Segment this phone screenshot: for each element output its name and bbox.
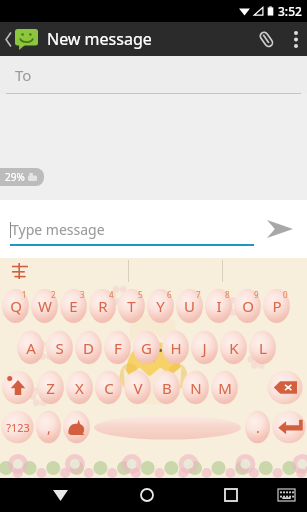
button[interactable]: More options — [285, 22, 307, 56]
button[interactable]: N — [181, 369, 210, 406]
button[interactable]: L — [248, 329, 277, 366]
button[interactable]: M — [210, 369, 239, 406]
staticText: B — [162, 378, 172, 398]
staticText: New message — [47, 28, 152, 50]
button[interactable]: W — [30, 287, 59, 325]
button[interactable]: ?123 — [0, 409, 35, 445]
staticText: 3:52 — [278, 3, 302, 19]
staticText: 7 — [196, 289, 201, 300]
staticText: U — [184, 296, 195, 316]
staticText: W — [38, 296, 52, 316]
other: Up — [5, 33, 12, 46]
button[interactable]: F — [103, 329, 132, 366]
button[interactable]: Language — [12, 263, 28, 279]
staticText: 8 — [225, 289, 230, 300]
staticText: 0 — [283, 289, 288, 300]
staticText: X — [75, 378, 84, 398]
staticText: R — [98, 296, 108, 316]
staticText: 1 — [22, 289, 27, 300]
staticText: ?123 — [6, 420, 30, 435]
staticText: L — [259, 338, 267, 358]
staticText: S — [55, 338, 64, 358]
staticText: Z — [46, 378, 55, 398]
button[interactable]: 29% — [0, 168, 44, 186]
button[interactable]: O — [233, 287, 262, 325]
button[interactable]: U — [175, 287, 204, 325]
staticText: C — [104, 378, 114, 398]
button[interactable]: Send — [261, 210, 299, 248]
button[interactable]: I — [204, 287, 233, 325]
staticText: V — [133, 378, 143, 398]
staticText: G — [141, 338, 152, 358]
staticText: I — [216, 296, 222, 316]
button[interactable]: B — [152, 369, 181, 406]
staticText: 6 — [167, 289, 172, 300]
button[interactable]: T — [117, 287, 146, 325]
button[interactable]: Home — [127, 478, 167, 512]
button[interactable]: Attach — [247, 22, 285, 56]
button[interactable]: . — [244, 409, 271, 445]
staticText: F — [114, 338, 122, 358]
button[interactable]: Space — [94, 412, 241, 442]
button[interactable]: Emoji — [62, 409, 91, 445]
button[interactable]: H — [161, 329, 190, 366]
button[interactable]: C — [94, 369, 123, 406]
staticText: E — [69, 296, 78, 316]
staticText: H — [170, 338, 182, 358]
staticText: Type message — [11, 220, 105, 239]
button[interactable]: S — [45, 329, 74, 366]
button[interactable]: P — [262, 287, 291, 325]
button[interactable]: Back — [40, 478, 80, 512]
staticText: 2 — [51, 289, 56, 300]
button[interactable]: D — [74, 329, 103, 366]
staticText: O — [242, 296, 254, 316]
staticText: T — [127, 296, 136, 316]
button[interactable]: R — [88, 287, 117, 325]
staticText: A — [26, 338, 36, 358]
staticText: Q — [10, 296, 22, 316]
button[interactable]: Shift — [0, 369, 36, 406]
staticText: . — [256, 418, 260, 437]
button[interactable]: J — [190, 329, 219, 366]
staticText: Y — [156, 296, 165, 316]
button[interactable]: E — [59, 287, 88, 325]
button[interactable]: A — [16, 329, 45, 366]
staticText: 5 — [138, 289, 143, 300]
staticText: , — [47, 418, 51, 437]
staticText: 9 — [254, 289, 259, 300]
staticText: 4 — [109, 289, 114, 300]
staticText: M — [218, 378, 232, 398]
staticText: P — [272, 296, 282, 316]
staticText: 3 — [80, 289, 85, 300]
button[interactable]: K — [219, 329, 248, 366]
button[interactable]: X — [65, 369, 94, 406]
button[interactable]: , — [35, 409, 62, 445]
staticText: K — [229, 338, 239, 358]
button[interactable]: To — [15, 65, 32, 85]
button[interactable]: Switch keyboard — [269, 478, 303, 512]
button[interactable]: Backspace — [265, 369, 305, 406]
staticText: D — [83, 338, 94, 358]
button[interactable]: Q — [1, 287, 30, 325]
button[interactable]: Recents — [211, 478, 251, 512]
button[interactable]: Y — [146, 287, 175, 325]
staticText: J — [202, 338, 207, 358]
button[interactable]: V — [123, 369, 152, 406]
button[interactable]: G — [132, 329, 161, 366]
button[interactable]: Up — [0, 29, 43, 50]
staticText: 29% — [5, 170, 25, 184]
button[interactable]: Enter — [271, 409, 307, 445]
button[interactable]: Type message — [10, 212, 254, 246]
button[interactable]: Z — [36, 369, 65, 406]
staticText: N — [190, 378, 202, 398]
